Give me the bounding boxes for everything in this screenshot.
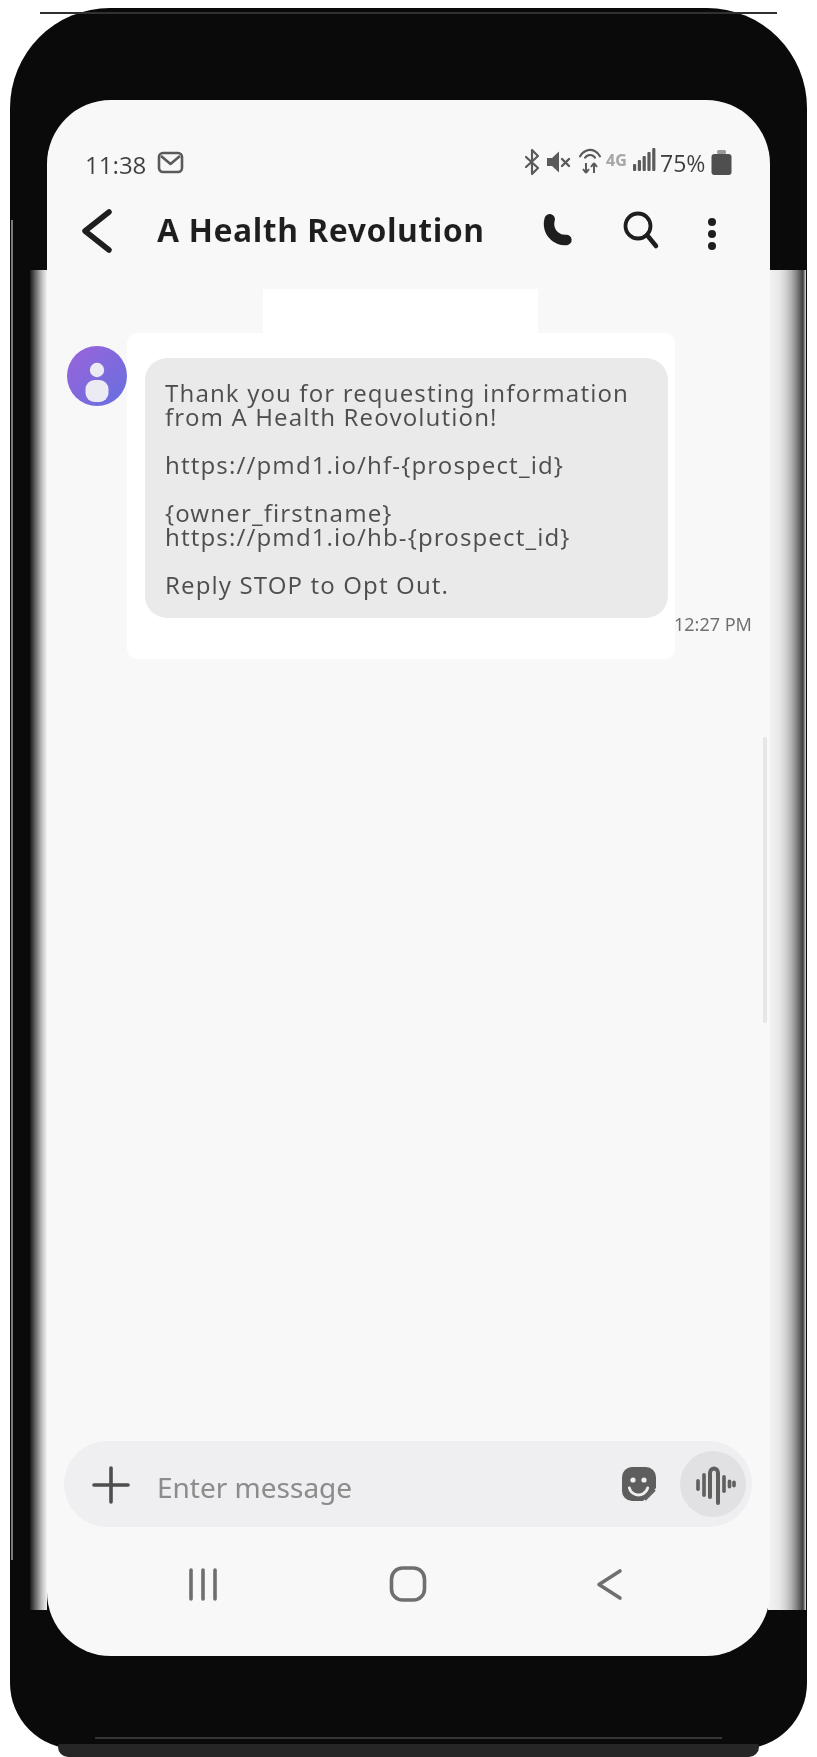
button[interactable] [67,346,127,406]
button[interactable] [89,1463,133,1507]
staticText: Enter message [157,1468,353,1506]
staticText: 11:38 [85,148,147,181]
button[interactable] [618,1463,660,1505]
staticText: 4G [606,149,627,171]
button[interactable] [614,203,670,259]
staticText: 75% [660,147,706,178]
staticText: 12:27 PM [674,612,752,637]
button[interactable] [77,205,119,257]
button[interactable] [587,1556,643,1612]
button[interactable] [690,203,734,259]
button[interactable] [680,1451,746,1517]
staticText: Thank you for requesting information fro… [165,376,629,601]
button[interactable] [175,1556,231,1612]
button[interactable] [534,203,590,259]
staticText: A Health Revolution [157,208,485,252]
button[interactable] [380,1556,436,1612]
button[interactable] [64,1441,752,1527]
